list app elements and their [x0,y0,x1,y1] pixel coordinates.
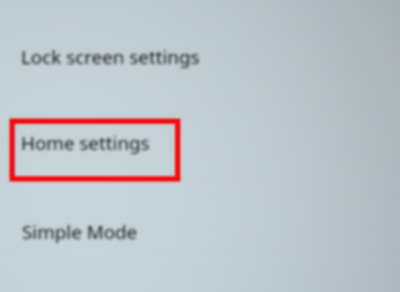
button[interactable]: Lock screen settings [0,35,400,79]
staticText: Simple Mode [22,219,138,245]
staticText: Lock screen settings [21,44,200,70]
button[interactable]: Simple Mode [0,210,400,254]
button[interactable]: Home settings [0,121,400,165]
staticText: Home settings [21,130,150,156]
